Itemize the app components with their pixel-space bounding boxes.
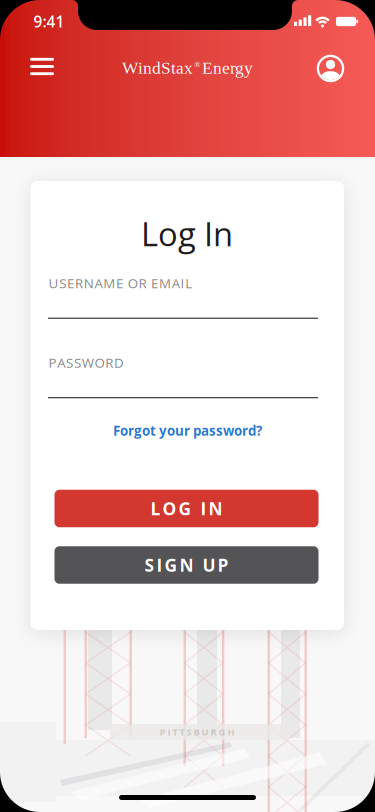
staticText: Forgot your password? — [113, 421, 262, 440]
button[interactable]: Profile — [308, 46, 352, 90]
button[interactable]: Forgot your password? — [107, 415, 268, 446]
staticText: WindStax — [122, 58, 193, 78]
staticText: PITTSBURGH — [159, 726, 234, 738]
staticText: 9:41 — [33, 11, 64, 32]
button[interactable]: LOG IN — [54, 490, 318, 527]
staticText: Log In — [141, 211, 233, 256]
staticText: USERNAME OR EMAIL — [48, 274, 192, 292]
staticText: SIGN UP — [144, 553, 228, 577]
staticText: LOG IN — [150, 497, 222, 520]
staticText: Energy — [202, 58, 253, 78]
button[interactable]: SIGN UP — [54, 546, 318, 584]
staticText: PASSWORD — [48, 353, 124, 372]
staticText: ® — [194, 60, 201, 69]
button[interactable]: Menu — [20, 48, 64, 85]
